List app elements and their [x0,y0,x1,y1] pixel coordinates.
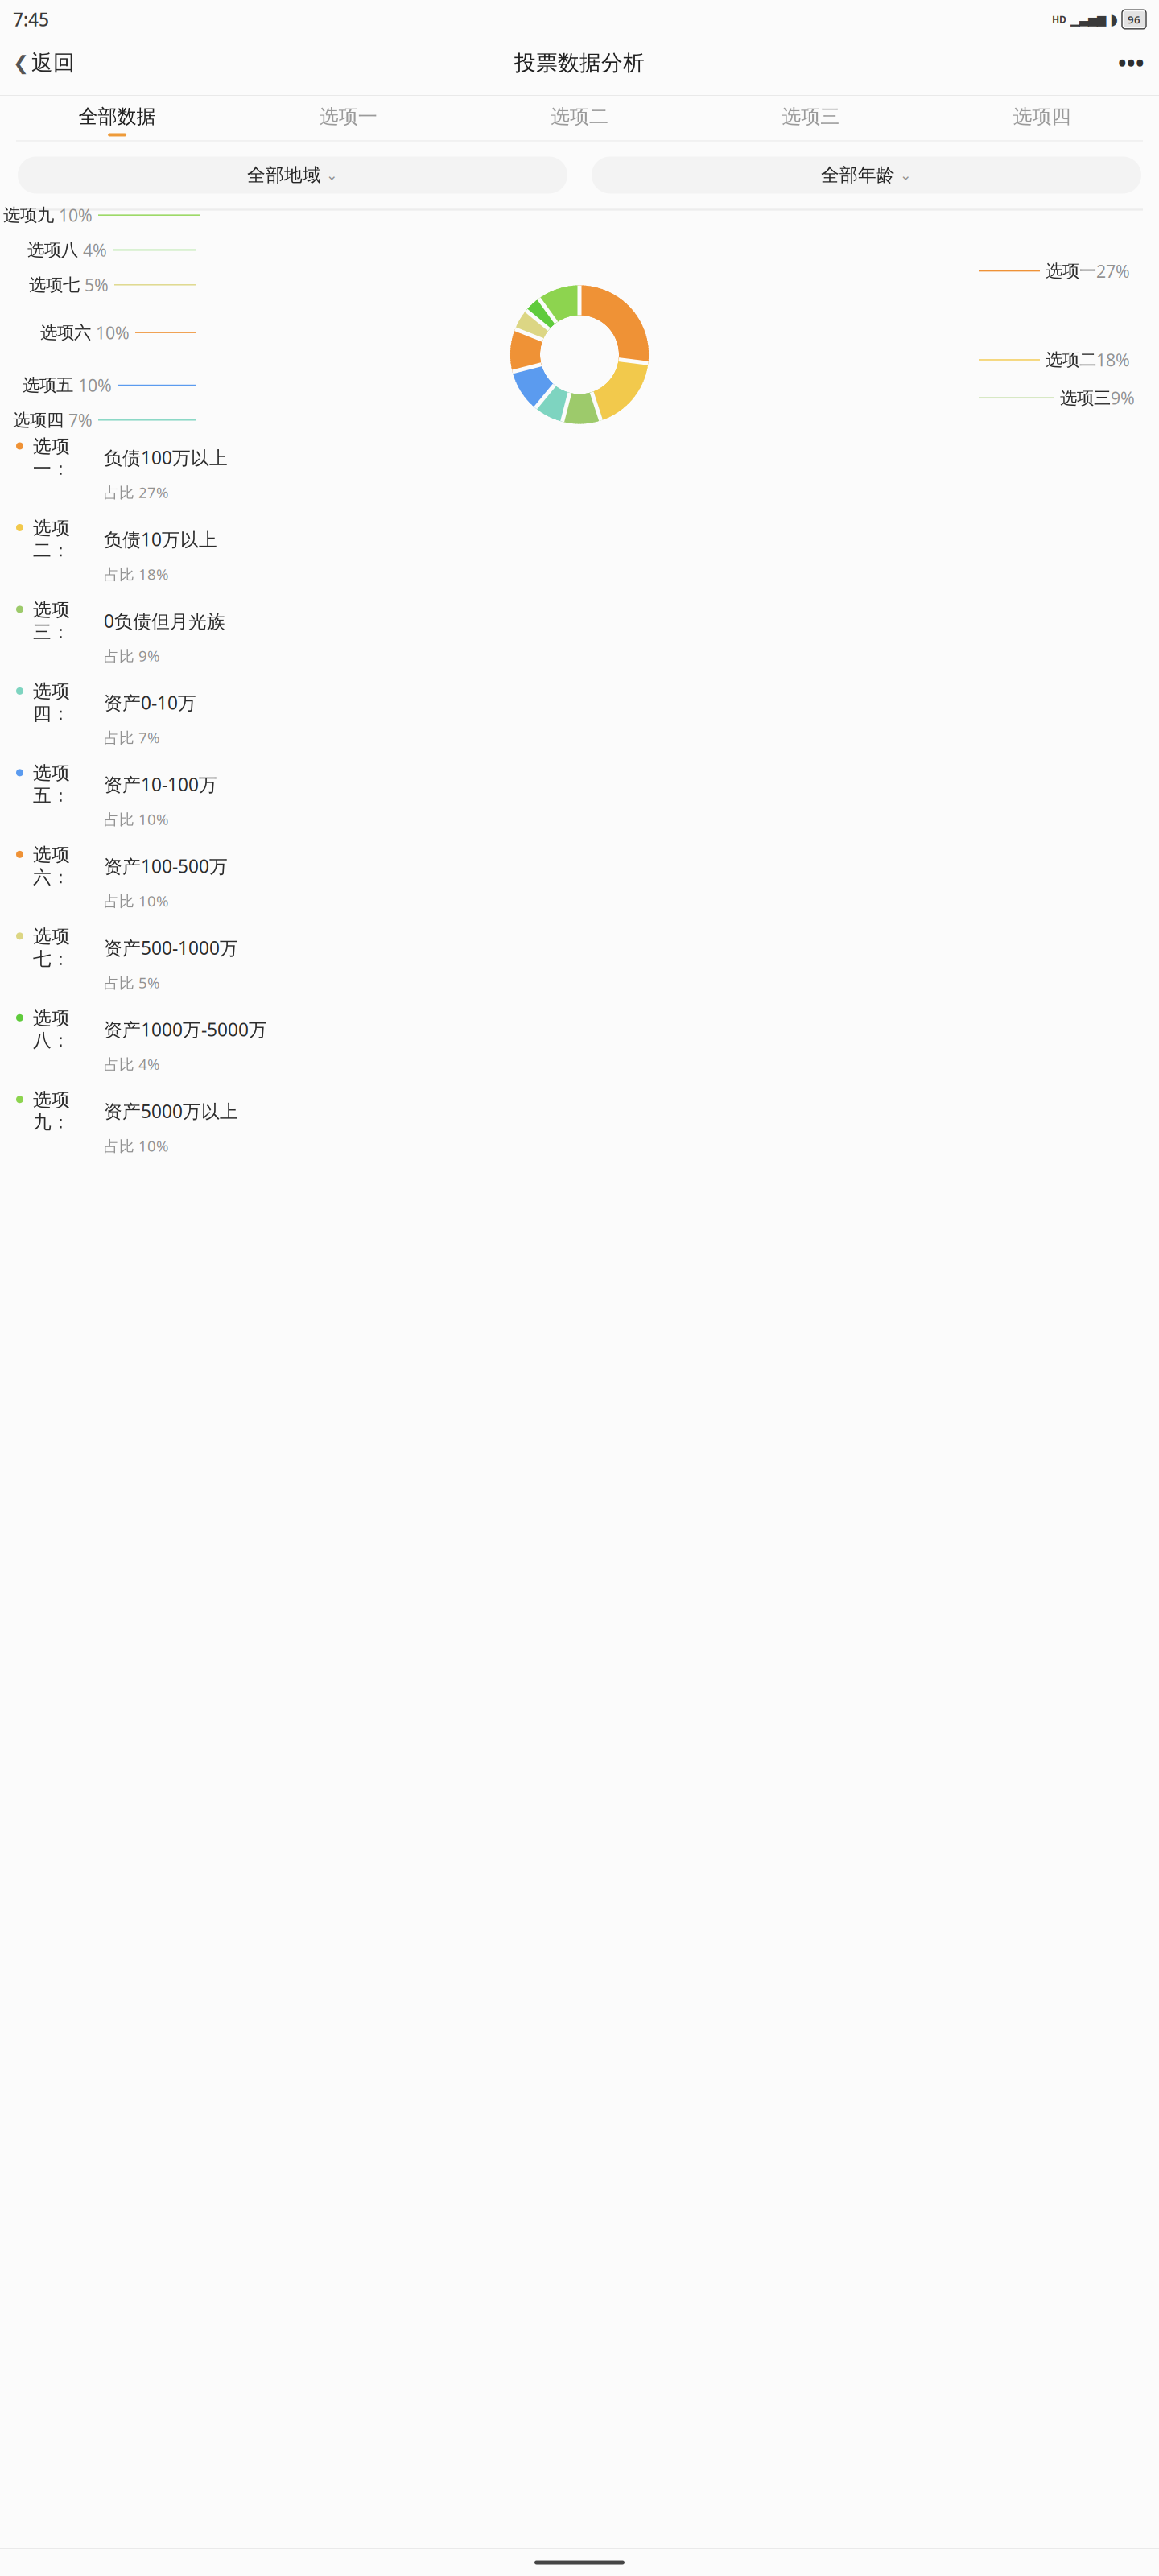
staticText: 选项八： [33,1007,70,1052]
staticText: 负债100万以上 [104,445,228,470]
staticText: 占比 7% [104,727,160,747]
button[interactable]: 全部年龄 [592,157,1141,194]
staticText: 资产100-500万 [104,854,228,878]
staticText: 资产0-10万 [104,690,196,715]
staticText: 10% [91,321,130,344]
staticText: ◗ [1110,11,1118,28]
staticText: 选项六 [40,322,91,343]
staticText: 返回 [31,50,75,76]
button[interactable]: 选项四 [926,96,1157,140]
staticText: 占比 10% [104,891,169,911]
staticText: 资产1000万-5000万 [104,1017,267,1041]
staticText: 全部地域 [247,164,321,186]
button[interactable]: 选项二 [464,96,695,140]
staticText: 资产5000万以上 [104,1099,238,1123]
button[interactable]: 选项三： [0,591,1159,673]
staticText: ⌄ [326,167,338,183]
staticText: ❮ [13,52,29,74]
staticText: HD [1052,13,1066,26]
staticText: 选项九 [3,205,54,226]
staticText: 占比 10% [104,809,169,829]
staticText: ▁▃▅▆ [1070,13,1106,26]
button[interactable]: 选项一 [233,96,464,140]
button[interactable]: 选项七： [0,918,1159,1000]
staticText: 占比 4% [104,1054,160,1074]
button[interactable]: 选项八： [0,1000,1159,1081]
staticText: 选项七 [29,274,80,295]
staticText: 投票数据分析 [514,50,645,76]
staticText: 选项一 [1046,260,1096,282]
staticText: 资产10-100万 [104,772,217,796]
button[interactable]: 选项二： [0,510,1159,591]
staticText: 10% [73,374,112,397]
button[interactable]: ❮ [8,42,80,83]
button[interactable]: 选项一： [0,428,1159,510]
staticText: 选项三 [782,105,840,128]
staticText: 选项八 [27,239,78,260]
staticText: 5% [80,273,109,296]
staticText: 9% [1111,386,1135,409]
staticText: 27% [1096,260,1130,282]
staticText: 选项三 [1060,387,1111,408]
staticText: 全部数据 [79,105,156,128]
staticText: 10% [54,204,93,226]
staticText: 选项六： [33,843,70,888]
button[interactable]: 选项六： [0,836,1159,918]
staticText: 选项四 [13,410,64,431]
staticText: 选项五 [23,375,73,396]
staticText: 96 [1128,12,1140,26]
staticText: 占比 9% [104,646,160,666]
staticText: 占比 18% [104,564,169,584]
button[interactable]: 选项九： [0,1081,1159,1163]
staticText: 选项三： [33,598,70,643]
staticText: 4% [78,239,107,261]
staticText: 占比 27% [104,482,169,502]
staticText: 选项七： [33,925,70,970]
staticText: ⌄ [900,167,912,183]
staticText: 选项二： [33,517,70,562]
staticText: 选项一 [319,105,377,128]
button[interactable]: 选项三 [695,96,926,140]
staticText: ••• [1118,48,1145,78]
button[interactable]: 全部数据 [2,96,233,140]
staticText: 全部年龄 [821,164,895,186]
staticText: 选项一： [33,435,70,480]
staticText: 0负债但月光族 [104,609,225,633]
staticText: 18% [1096,348,1130,371]
button[interactable]: 选项四： [0,673,1159,755]
staticText: 选项二 [1046,349,1096,370]
staticText: 7% [64,409,93,431]
staticText: 资产500-1000万 [104,935,238,960]
staticText: 负债10万以上 [104,527,217,551]
staticText: 选项二 [551,105,608,128]
staticText: 选项四： [33,680,70,725]
staticText: 7:45 [13,7,49,31]
staticText: 选项九： [33,1089,70,1133]
staticText: 占比 5% [104,972,160,992]
button[interactable]: 全部地域 [18,157,567,194]
button[interactable]: 更多 [1112,40,1151,86]
staticText: 选项五： [33,762,70,807]
staticText: 占比 10% [104,1136,169,1156]
button[interactable]: 选项五： [0,755,1159,836]
staticText: 选项四 [1013,105,1071,128]
